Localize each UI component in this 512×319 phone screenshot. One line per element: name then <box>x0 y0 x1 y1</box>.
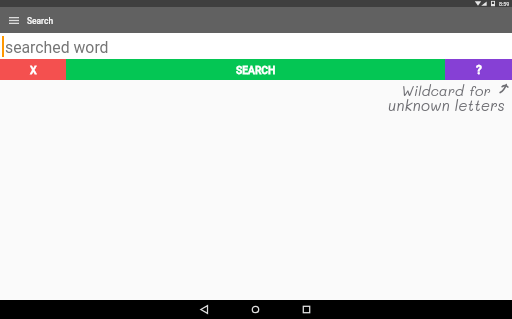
staticText: 8:59 <box>499 1 510 7</box>
button[interactable]: Home <box>240 300 271 319</box>
staticText: X <box>30 64 37 76</box>
button[interactable]: ? <box>445 59 512 80</box>
button[interactable]: searched word <box>0 33 512 59</box>
staticText: ? <box>476 63 482 77</box>
staticText: Wildcard <box>401 81 464 99</box>
button[interactable]: SEARCH <box>66 59 445 80</box>
staticText: unknown letters <box>388 95 505 114</box>
staticText: searched word <box>5 38 109 57</box>
staticText: for <box>469 81 491 99</box>
staticText: Search <box>27 16 54 26</box>
button[interactable]: Recent apps <box>291 300 322 319</box>
button[interactable]: X <box>0 59 66 80</box>
button[interactable]: Open navigation drawer <box>5 7 23 33</box>
staticText: SEARCH <box>236 64 276 76</box>
button[interactable]: Back <box>189 300 220 319</box>
